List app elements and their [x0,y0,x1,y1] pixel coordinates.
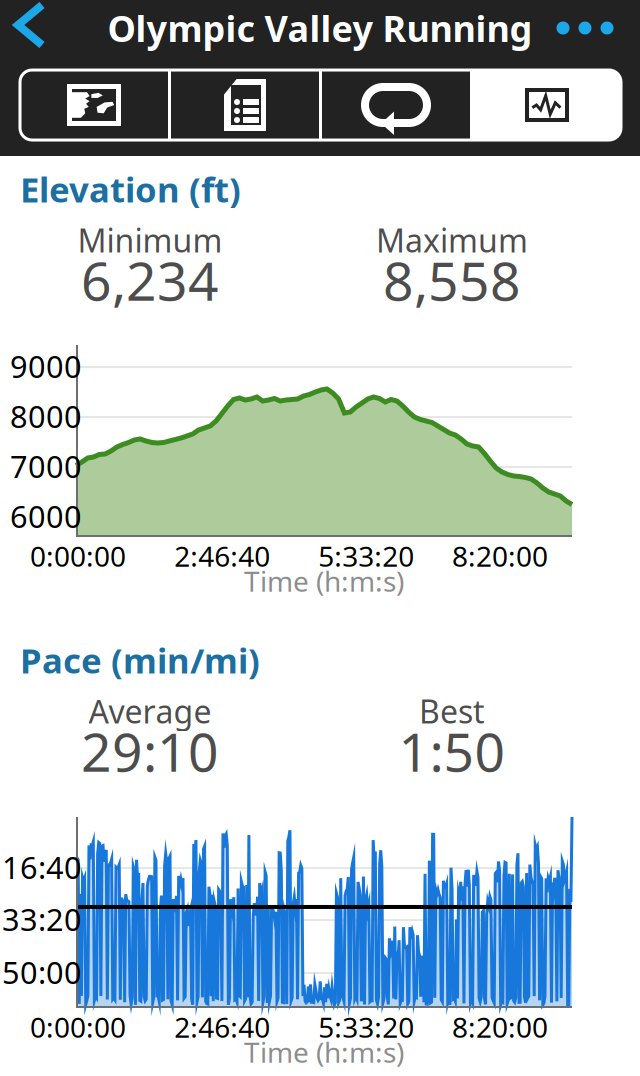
staticText: 8:20:00 [452,537,548,575]
staticText: Time (h:m:s) [244,1033,404,1071]
staticText: 0:00:00 [30,537,126,575]
staticText: 2:46:40 [174,537,270,575]
button[interactable]: Details [171,70,319,140]
staticText: 8,558 [383,245,521,315]
staticText: 9000 [10,346,82,386]
staticText: Minimum [77,219,222,261]
button[interactable]: Map [20,70,168,140]
staticText: 1:50 [398,716,505,786]
staticText: 8000 [10,396,82,436]
button[interactable]: Back [0,0,72,56]
staticText: Maximum [376,219,528,261]
staticText: 6,234 [81,245,219,315]
staticText: 8:20:00 [452,1008,548,1046]
staticText: 33:20 [2,899,82,939]
staticText: 5:33:20 [318,1008,414,1046]
staticText: Best [419,690,485,732]
staticText: 2:46:40 [174,1008,270,1046]
staticText: 29:10 [81,716,219,786]
staticText: Pace (min/mi) [20,637,260,683]
button[interactable]: More options [543,0,627,56]
staticText: 16:40 [2,847,82,887]
staticText: 50:00 [2,952,82,992]
staticText: Elevation (ft) [20,166,241,212]
staticText: 6000 [10,496,82,536]
staticText: Time (h:m:s) [244,562,404,600]
button[interactable]: Laps [322,70,470,140]
staticText: 5:33:20 [318,537,414,575]
button[interactable]: Charts [473,70,621,140]
staticText: Olympic Valley Running [107,4,532,52]
staticText: Average [88,690,211,732]
staticText: 7000 [10,446,82,486]
staticText: 0:00:00 [30,1008,126,1046]
